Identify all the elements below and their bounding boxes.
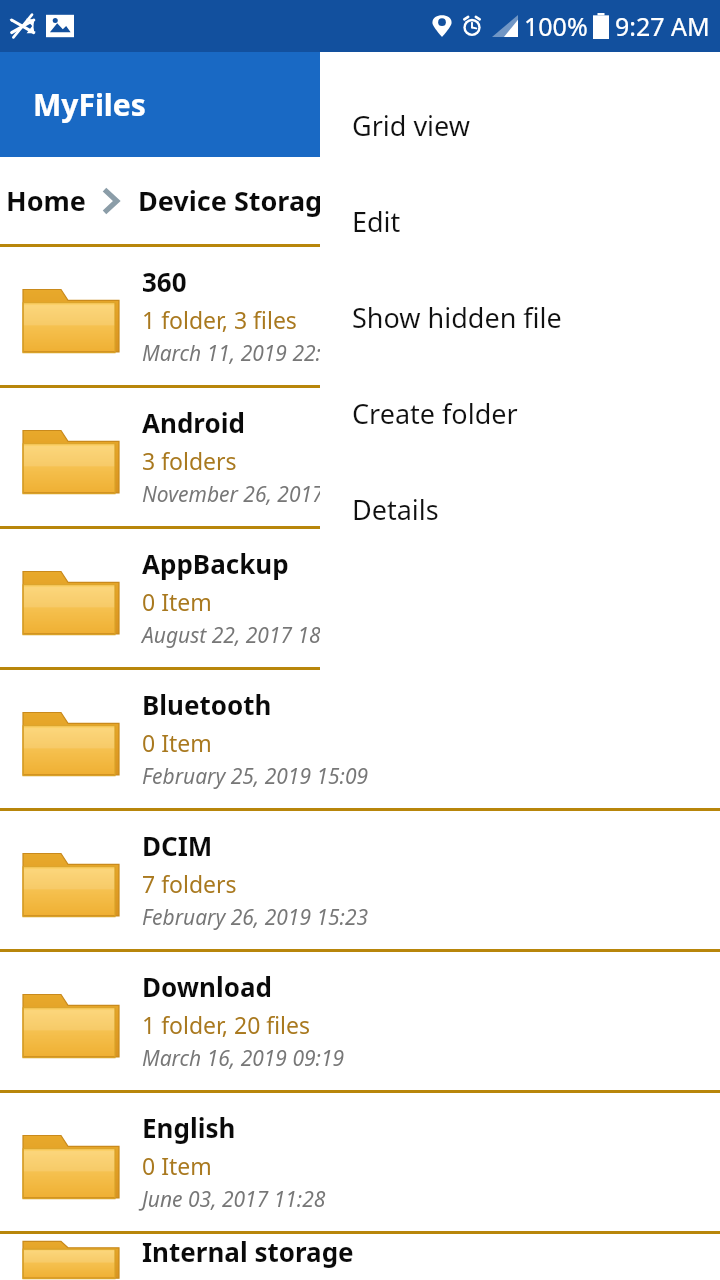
- button[interactable]: 360: [0, 247, 720, 385]
- staticText: Device Storage: [138, 182, 339, 219]
- staticText: Download: [142, 969, 272, 1004]
- staticText: March 16, 2019 09:19: [142, 1044, 345, 1073]
- button[interactable]: Android: [0, 388, 720, 526]
- button[interactable]: Create folder: [320, 365, 720, 461]
- staticText: August 22, 2017 18:13: [142, 621, 350, 650]
- staticText: February 26, 2019 15:23: [142, 903, 369, 932]
- staticText: 100%: [524, 9, 588, 43]
- button[interactable]: DCIM: [0, 811, 720, 949]
- staticText: Edit: [352, 203, 401, 240]
- button[interactable]: Download: [0, 952, 720, 1090]
- button[interactable]: Show hidden file: [320, 269, 720, 365]
- staticText: Home: [6, 182, 86, 219]
- staticText: Create folder: [352, 395, 518, 432]
- staticText: Internal storage: [142, 1234, 354, 1269]
- button[interactable]: Details: [320, 461, 720, 557]
- staticText: 360: [142, 264, 187, 299]
- staticText: 0 Item: [142, 1150, 212, 1181]
- staticText: June 03, 2017 11:28: [142, 1185, 326, 1214]
- staticText: MyFiles: [33, 84, 146, 125]
- staticText: 7 folders: [142, 868, 237, 899]
- button[interactable]: Home: [0, 174, 92, 227]
- staticText: Show hidden file: [352, 299, 562, 336]
- button[interactable]: Grid view: [320, 77, 720, 173]
- staticText: February 25, 2019 15:09: [142, 762, 369, 791]
- button[interactable]: Device Storage: [132, 174, 345, 227]
- staticText: 9:27 AM: [615, 9, 710, 43]
- staticText: Details: [352, 491, 439, 528]
- button[interactable]: English: [0, 1093, 720, 1231]
- button[interactable]: Edit: [320, 173, 720, 269]
- button[interactable]: Bluetooth: [0, 670, 720, 808]
- staticText: 1 folder, 20 files: [142, 1009, 311, 1040]
- staticText: November 26, 2017 07:46: [142, 480, 381, 509]
- staticText: Grid view: [352, 107, 470, 144]
- staticText: Bluetooth: [142, 687, 272, 722]
- staticText: Android: [142, 405, 245, 440]
- button[interactable]: AppBackup: [0, 529, 720, 667]
- staticText: 1 folder, 3 files: [142, 304, 297, 335]
- button[interactable]: Internal storage: [0, 1234, 720, 1280]
- staticText: 0 Item: [142, 727, 212, 758]
- staticText: 0 Item: [142, 586, 212, 617]
- staticText: DCIM: [142, 828, 213, 863]
- staticText: English: [142, 1110, 236, 1145]
- staticText: March 11, 2019 22:19: [142, 339, 345, 368]
- staticText: 3 folders: [142, 445, 237, 476]
- staticText: AppBackup: [142, 546, 289, 581]
